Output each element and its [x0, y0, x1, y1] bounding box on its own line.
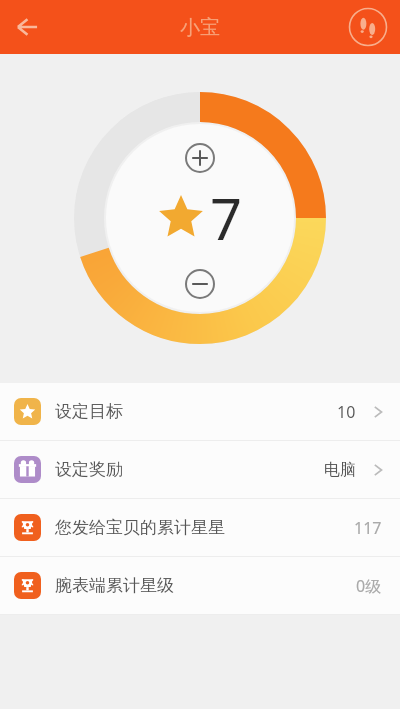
- button[interactable]: Increase: [182, 140, 218, 176]
- button[interactable]: 腕表端累计星级: [0, 557, 400, 614]
- staticText: 7: [210, 180, 243, 256]
- staticText: 您发给宝贝的累计星星: [55, 517, 225, 538]
- staticText: 0级: [356, 575, 382, 597]
- button[interactable]: Back: [0, 0, 54, 54]
- button[interactable]: 设定目标: [0, 383, 400, 440]
- button[interactable]: 设定奖励: [0, 441, 400, 498]
- staticText: 117: [354, 517, 382, 539]
- staticText: 设定目标: [55, 401, 123, 422]
- staticText: 10: [337, 401, 356, 423]
- staticText: 电脑: [324, 460, 356, 480]
- staticText: 设定奖励: [55, 459, 123, 480]
- button[interactable]: Decrease: [182, 266, 218, 302]
- staticText: 小宝: [180, 15, 220, 40]
- button[interactable]: Steps: [346, 5, 390, 49]
- staticText: 腕表端累计星级: [55, 575, 174, 596]
- button[interactable]: 您发给宝贝的累计星星: [0, 499, 400, 556]
